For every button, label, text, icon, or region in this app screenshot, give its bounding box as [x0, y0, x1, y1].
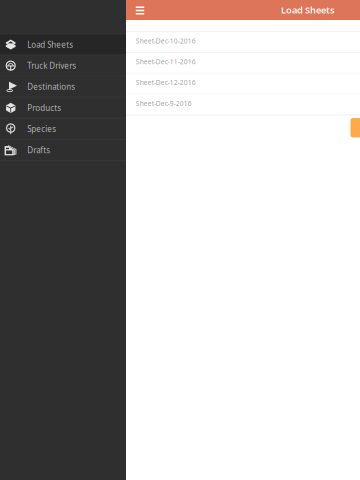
button[interactable]: Species [0, 119, 126, 140]
staticText: Load Sheets [281, 4, 335, 16]
button[interactable]: Add load sheet [350, 118, 360, 137]
button[interactable]: Sheet-Dec-12-2016 [126, 74, 360, 95]
staticText: Sheet-Dec-12-2016 [136, 78, 196, 87]
button[interactable]: Sheet-Dec-10-2016 [126, 32, 360, 53]
button[interactable]: Menu [133, 0, 147, 20]
staticText: Destinations [27, 81, 75, 92]
staticText: Sheet-Dec-10-2016 [136, 36, 196, 45]
button[interactable]: Destinations [0, 77, 126, 98]
button[interactable]: Load Sheets [0, 34, 126, 56]
button[interactable]: Sheet-Dec-9-2016 [126, 95, 360, 115]
staticText: Sheet-Dec-11-2016 [136, 57, 196, 66]
staticText: Truck Drivers [27, 60, 76, 71]
button[interactable]: Drafts [0, 140, 126, 161]
button[interactable]: Products [0, 98, 126, 119]
button[interactable]: Truck Drivers [0, 56, 126, 77]
button[interactable]: Load Sheets [281, 0, 335, 20]
staticText: Drafts [27, 145, 50, 155]
staticText: Species [27, 124, 56, 134]
staticText: Products [27, 102, 61, 113]
staticText: Sheet-Dec-9-2016 [136, 99, 192, 108]
staticText: Load Sheets [27, 39, 73, 50]
button[interactable]: Sheet-Dec-11-2016 [126, 53, 360, 74]
